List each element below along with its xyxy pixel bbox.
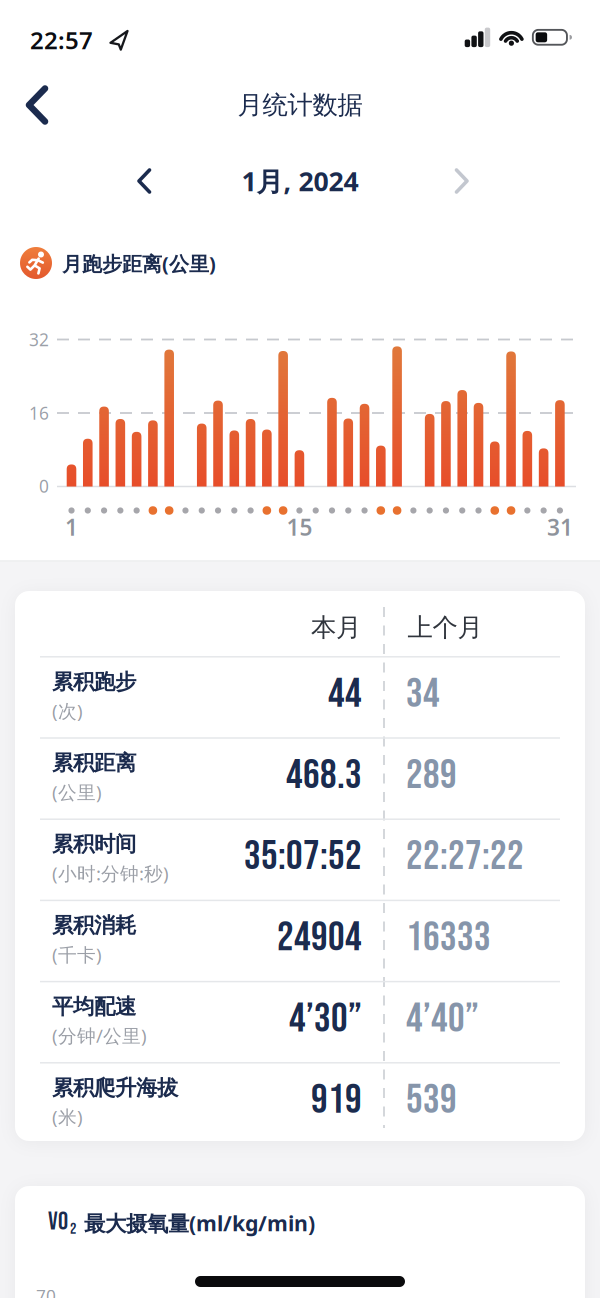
staticText: 34 xyxy=(406,669,440,719)
staticText: 本月 xyxy=(311,612,361,643)
staticText: 月跑步距离(公里) xyxy=(62,250,216,277)
staticText: (米) xyxy=(52,1104,83,1129)
button[interactable]: Previous month xyxy=(129,164,159,198)
staticText: 468.3 xyxy=(286,751,362,800)
staticText: 24904 xyxy=(277,913,362,963)
staticText: 2 xyxy=(70,1219,76,1239)
staticText: 1月, 2024 xyxy=(241,163,358,199)
staticText: (公里) xyxy=(52,780,102,804)
staticText: 35:07:52 xyxy=(244,832,362,881)
staticText: 31 xyxy=(547,512,573,542)
staticText: 累积距离 xyxy=(52,750,136,776)
staticText: 70 xyxy=(36,1284,56,1298)
staticText: 16333 xyxy=(406,913,491,963)
staticText: 1 xyxy=(65,512,78,542)
staticText: 539 xyxy=(406,1075,457,1125)
staticText: 月统计数据 xyxy=(237,89,362,120)
staticText: 最大摄氧量(ml/kg/min) xyxy=(84,1209,315,1237)
staticText: 累积爬升海拔 xyxy=(52,1075,178,1101)
staticText: VO xyxy=(48,1207,68,1237)
staticText: (次) xyxy=(52,698,83,723)
staticText: 累积消耗 xyxy=(52,912,136,938)
staticText: 平均配速 xyxy=(52,993,136,1020)
staticText: 22:27:22 xyxy=(406,832,524,881)
button[interactable]: Next month xyxy=(447,164,477,198)
staticText: 累积时间 xyxy=(52,831,136,857)
staticText: (千卡) xyxy=(52,942,102,967)
staticText: 15 xyxy=(286,512,312,542)
button[interactable]: Back xyxy=(16,83,56,127)
staticText: 919 xyxy=(311,1075,362,1125)
staticText: 4’40” xyxy=(406,994,479,1044)
staticText: 0 xyxy=(39,474,49,497)
staticText: (小时:分钟:秒) xyxy=(52,861,169,886)
staticText: 32 xyxy=(29,328,49,351)
staticText: 上个月 xyxy=(407,612,482,643)
staticText: (分钟/公里) xyxy=(52,1023,147,1048)
staticText: 16 xyxy=(29,401,49,424)
staticText: 4’30” xyxy=(289,994,362,1044)
staticText: 289 xyxy=(406,751,457,800)
staticText: 44 xyxy=(328,669,362,719)
staticText: 22:57 xyxy=(30,24,93,56)
staticText: 累积跑步 xyxy=(52,669,136,695)
